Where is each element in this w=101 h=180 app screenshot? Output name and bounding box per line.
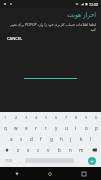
button[interactable]	[24, 70, 77, 79]
button[interactable]: Recents	[67, 167, 101, 180]
staticText: a	[10, 136, 13, 142]
staticText: m	[79, 147, 84, 153]
staticText: i	[75, 125, 77, 131]
staticText: v	[47, 147, 50, 153]
button[interactable]: q	[0, 122, 11, 133]
button[interactable]: CANCEL	[5, 35, 25, 42]
staticText: s	[20, 136, 23, 142]
button[interactable]: w	[11, 122, 21, 133]
button[interactable]: 4	[31, 113, 41, 122]
button[interactable]: j	[66, 133, 76, 144]
staticText: r	[35, 125, 37, 131]
button[interactable]: e	[21, 122, 31, 133]
button[interactable]: x	[23, 144, 33, 155]
button[interactable]: g	[46, 133, 56, 144]
staticText: برای تغییر POPUP لطفا اطلاعات حساب کاربر…	[5, 22, 96, 31]
button[interactable]: 8	[71, 113, 81, 122]
staticText: x	[27, 147, 30, 153]
staticText: w	[14, 125, 18, 131]
button[interactable]: z	[13, 144, 23, 155]
button[interactable]: v	[43, 144, 54, 155]
button[interactable]: Back	[0, 167, 33, 180]
staticText: n	[69, 147, 72, 153]
button[interactable]: 6	[51, 113, 61, 122]
button[interactable]: 7	[61, 113, 71, 122]
staticText: 2	[15, 115, 18, 120]
staticText: f	[40, 136, 42, 142]
staticText: d	[30, 136, 33, 142]
button[interactable]: t	[41, 122, 51, 133]
staticText: o	[85, 125, 88, 131]
staticText: 12:00	[89, 2, 98, 7]
staticText: e	[25, 125, 28, 131]
staticText: 4	[35, 115, 38, 120]
button[interactable]: n	[65, 144, 76, 155]
staticText: l	[90, 136, 92, 142]
button[interactable]: i	[71, 122, 81, 133]
staticText: 1	[4, 115, 7, 120]
staticText: j	[70, 136, 72, 142]
button[interactable]: Enter	[88, 157, 96, 165]
button[interactable]: ?123	[1, 155, 15, 166]
button[interactable]: Shift	[0, 144, 13, 155]
staticText: 5	[45, 115, 48, 120]
button[interactable]: l	[86, 133, 96, 144]
staticText: 7	[65, 115, 68, 120]
staticText: u	[65, 125, 68, 131]
button[interactable]: a	[6, 133, 16, 144]
button[interactable]: u	[61, 122, 71, 133]
button[interactable]: k	[76, 133, 86, 144]
button[interactable]: c	[33, 144, 43, 155]
button[interactable]: Home	[33, 167, 67, 180]
button[interactable]: 0	[91, 113, 101, 122]
staticText: 6	[55, 115, 58, 120]
button[interactable]: 9	[81, 113, 91, 122]
button[interactable]: 2	[11, 113, 21, 122]
staticText: h	[60, 136, 63, 142]
button[interactable]: s	[16, 133, 26, 144]
staticText: k	[80, 136, 83, 142]
button[interactable]: Backspace	[87, 144, 101, 155]
staticText: g	[50, 136, 53, 142]
staticText: z	[17, 147, 20, 153]
button[interactable]: 5	[41, 113, 51, 122]
staticText: ?123	[5, 159, 12, 163]
staticText: CANCEL	[7, 36, 23, 41]
button[interactable]: f	[36, 133, 46, 144]
staticText: احراز هویت	[5, 11, 96, 19]
staticText: c	[37, 147, 40, 153]
staticText: 3	[25, 115, 28, 120]
staticText: p	[95, 125, 98, 131]
staticText: .	[78, 158, 80, 163]
staticText: y	[55, 125, 58, 131]
button[interactable]: y	[51, 122, 61, 133]
button[interactable]: b	[54, 144, 65, 155]
staticText: ,	[19, 158, 21, 163]
staticText: 0	[95, 115, 98, 120]
button[interactable]: o	[81, 122, 91, 133]
button[interactable]: ,	[15, 155, 25, 166]
staticText: 8	[75, 115, 78, 120]
button[interactable]: r	[31, 122, 41, 133]
button[interactable]: m	[76, 144, 87, 155]
button[interactable]: 1	[0, 113, 11, 122]
staticText: q	[4, 125, 7, 131]
button[interactable]: 3	[21, 113, 31, 122]
staticText: b	[58, 147, 61, 153]
button[interactable]: d	[26, 133, 36, 144]
button[interactable]: p	[91, 122, 101, 133]
staticText: t	[45, 125, 47, 131]
button[interactable]: h	[56, 133, 66, 144]
staticText: 9	[85, 115, 88, 120]
